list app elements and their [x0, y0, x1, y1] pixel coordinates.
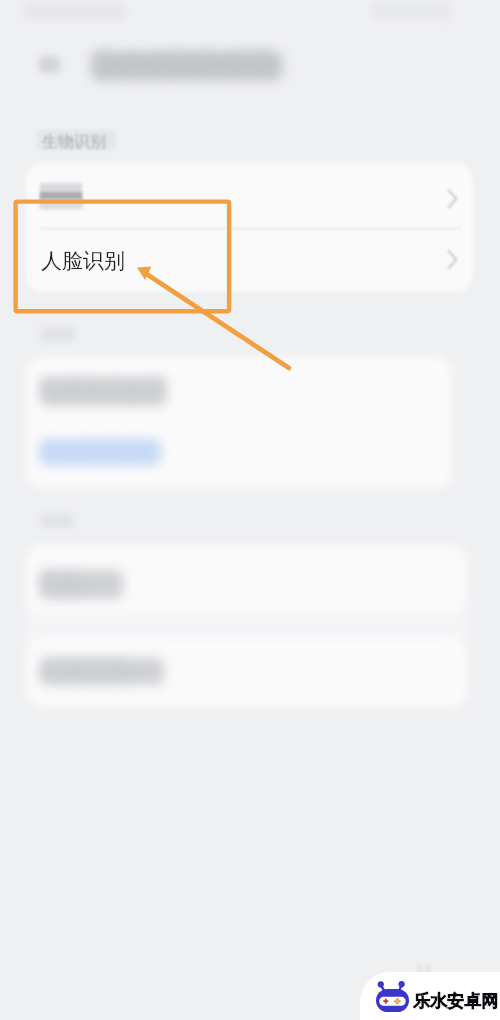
other: 乐水安卓网 — [360, 972, 500, 1020]
staticText: 人脸识别 — [41, 248, 125, 274]
staticText: M — [416, 958, 432, 981]
button[interactable]: 人脸识别 — [26, 229, 473, 292]
staticText: 安全与隐私设置 — [92, 47, 274, 80]
staticText: 隐私 — [41, 569, 85, 597]
staticText: 锁屏密码设置 — [41, 375, 167, 401]
staticText: 乐水安卓网 — [413, 991, 498, 1012]
staticText: 生物识别 — [42, 132, 106, 152]
staticText: 修改锁屏密码 — [41, 438, 161, 463]
staticText: 应用权限 — [41, 656, 129, 684]
